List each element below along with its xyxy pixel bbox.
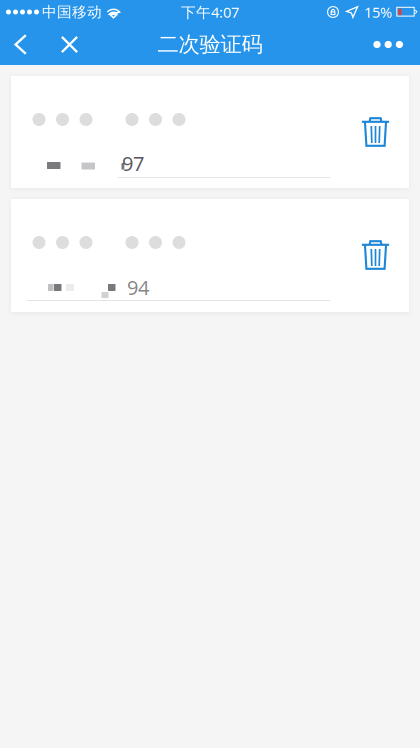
staticText: 97 bbox=[122, 150, 144, 177]
staticText: 二次验证码 bbox=[157, 31, 262, 58]
staticText: 下午4:07 bbox=[181, 2, 239, 22]
button[interactable]: More options bbox=[355, 24, 420, 65]
button[interactable]: Close bbox=[49, 24, 89, 65]
staticText: 中国移动 bbox=[42, 3, 102, 21]
staticText: 94 bbox=[127, 274, 149, 301]
staticText: 15% bbox=[364, 2, 392, 22]
button[interactable]: Delete code bbox=[353, 232, 398, 278]
button[interactable]: Back bbox=[0, 24, 49, 65]
button[interactable]: Delete code bbox=[353, 109, 398, 155]
button[interactable]: Copy verification code bbox=[11, 199, 345, 312]
button[interactable]: Copy verification code bbox=[11, 76, 345, 188]
